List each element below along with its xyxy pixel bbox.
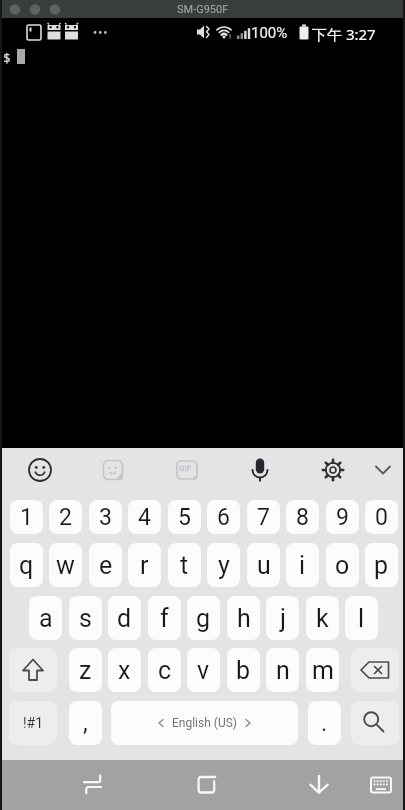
button[interactable] bbox=[299, 760, 339, 810]
button[interactable] bbox=[9, 648, 57, 692]
button[interactable]: f bbox=[148, 596, 181, 640]
staticText: k bbox=[316, 604, 329, 633]
button[interactable]: 6 bbox=[207, 500, 240, 534]
staticText: b bbox=[236, 656, 251, 685]
button[interactable] bbox=[351, 648, 399, 692]
button[interactable]: i bbox=[286, 543, 319, 587]
button[interactable]: w bbox=[49, 543, 82, 587]
staticText: e bbox=[99, 551, 113, 580]
button[interactable]: 4 bbox=[128, 500, 161, 534]
button[interactable]: 1 bbox=[10, 500, 43, 534]
staticText: t bbox=[180, 551, 189, 580]
button[interactable]: t bbox=[168, 543, 201, 587]
button[interactable]: 7 bbox=[247, 500, 280, 534]
button[interactable]: c bbox=[148, 648, 181, 692]
button[interactable]: h bbox=[227, 596, 260, 640]
button[interactable]: m bbox=[306, 648, 339, 692]
button[interactable]: n bbox=[266, 648, 299, 692]
button[interactable]: b bbox=[227, 648, 260, 692]
button[interactable]: , bbox=[69, 701, 102, 745]
staticText: z bbox=[79, 656, 92, 685]
staticText: j bbox=[280, 604, 286, 633]
staticText: y bbox=[218, 551, 230, 580]
staticText: n bbox=[276, 656, 290, 685]
button[interactable]: x bbox=[108, 648, 141, 692]
button[interactable]: p bbox=[365, 543, 398, 587]
staticText: 9 bbox=[336, 504, 349, 531]
button[interactable]: v bbox=[187, 648, 220, 692]
staticText: d bbox=[117, 604, 132, 633]
button[interactable]: !#1 bbox=[9, 701, 57, 745]
staticText: g bbox=[196, 604, 211, 633]
button[interactable]: 3 bbox=[89, 500, 122, 534]
button[interactable]: y bbox=[207, 543, 240, 587]
staticText: 6 bbox=[217, 504, 230, 531]
button[interactable]: 2 bbox=[49, 500, 82, 534]
button[interactable] bbox=[72, 760, 112, 810]
staticText: 2 bbox=[59, 504, 72, 531]
staticText: , bbox=[83, 709, 88, 737]
staticText: p bbox=[374, 551, 389, 580]
staticText: x bbox=[118, 656, 131, 685]
button[interactable]: English (US) bbox=[111, 701, 298, 745]
staticText: q bbox=[19, 551, 34, 580]
button[interactable]: k bbox=[306, 596, 339, 640]
staticText: !#1 bbox=[23, 715, 44, 731]
staticText: v bbox=[197, 656, 210, 685]
button[interactable]: d bbox=[108, 596, 141, 640]
staticText: h bbox=[237, 604, 251, 633]
staticText: English (US) bbox=[172, 716, 237, 730]
staticText: 100% bbox=[251, 24, 288, 42]
staticText: $ bbox=[3, 49, 11, 67]
staticText: i bbox=[299, 551, 306, 580]
button[interactable]: e bbox=[89, 543, 122, 587]
staticText: s bbox=[79, 604, 92, 633]
staticText: . bbox=[321, 709, 328, 737]
staticText: GIF bbox=[179, 464, 192, 473]
button[interactable]: z bbox=[69, 648, 102, 692]
staticText: 3 bbox=[99, 504, 112, 531]
staticText: 7 bbox=[257, 504, 270, 531]
staticText: w bbox=[56, 551, 75, 580]
staticText: 0 bbox=[375, 504, 388, 531]
staticText: u bbox=[257, 551, 271, 580]
button[interactable]: s bbox=[69, 596, 102, 640]
button[interactable]: l bbox=[345, 596, 378, 640]
staticText: o bbox=[335, 551, 350, 580]
button[interactable]: 5 bbox=[168, 500, 201, 534]
button[interactable]: 8 bbox=[286, 500, 319, 534]
staticText: l bbox=[358, 604, 365, 633]
button[interactable] bbox=[186, 760, 226, 810]
button[interactable]: 9 bbox=[326, 500, 359, 534]
staticText: a bbox=[39, 604, 53, 633]
button[interactable]: o bbox=[326, 543, 359, 587]
staticText: SM-G950F bbox=[177, 3, 229, 16]
button[interactable]: . bbox=[308, 701, 341, 745]
staticText: 下午 3:27 bbox=[312, 24, 376, 44]
button[interactable]: r bbox=[128, 543, 161, 587]
staticText: 4 bbox=[138, 504, 151, 531]
button[interactable]: 0 bbox=[365, 500, 398, 534]
button[interactable]: g bbox=[187, 596, 220, 640]
staticText: f bbox=[160, 604, 169, 633]
button[interactable]: j bbox=[266, 596, 299, 640]
button[interactable]: u bbox=[247, 543, 280, 587]
staticText: c bbox=[158, 656, 172, 685]
button[interactable]: GIF bbox=[0, 448, 405, 492]
button[interactable] bbox=[351, 701, 399, 745]
button[interactable]: a bbox=[29, 596, 62, 640]
staticText: r bbox=[140, 551, 149, 580]
staticText: 8 bbox=[296, 504, 309, 531]
staticText: m bbox=[312, 656, 334, 685]
button[interactable]: q bbox=[10, 543, 43, 587]
staticText: 5 bbox=[178, 504, 191, 531]
button[interactable] bbox=[366, 760, 396, 810]
staticText: 1 bbox=[20, 504, 33, 531]
